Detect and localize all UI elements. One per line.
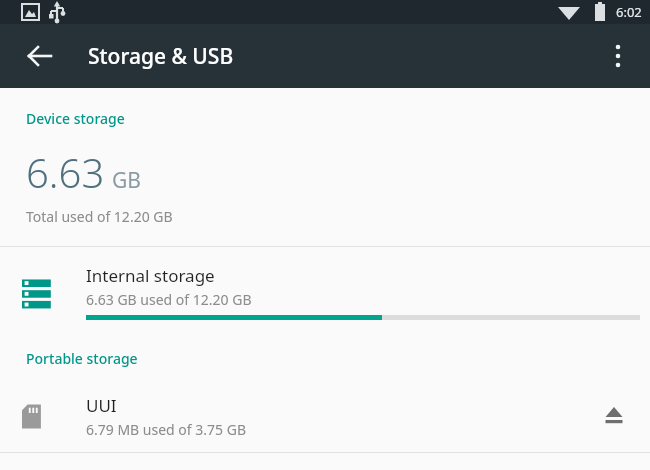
button[interactable]: Back <box>16 32 64 80</box>
staticText: UUI <box>86 394 117 417</box>
button[interactable]: UUI <box>0 381 650 451</box>
button[interactable]: Eject <box>592 394 636 438</box>
button[interactable]: Internal storage <box>0 247 650 335</box>
staticText: 6.63 GB used of 12.20 GB <box>86 290 252 309</box>
staticText: 6.79 MB used of 3.75 GB <box>86 420 246 439</box>
staticText: 6:02 <box>616 3 642 21</box>
staticText: Internal storage <box>86 264 215 287</box>
staticText: Device storage <box>26 109 125 128</box>
staticText: Storage & USB <box>88 42 234 71</box>
staticText: GB <box>112 166 141 195</box>
button[interactable]: More options <box>594 32 642 80</box>
staticText: Total used of 12.20 GB <box>26 207 173 226</box>
staticText: Portable storage <box>26 349 138 368</box>
staticText: 6.63 <box>26 145 105 199</box>
